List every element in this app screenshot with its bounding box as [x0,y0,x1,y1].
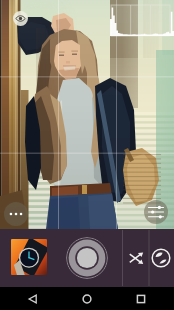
button[interactable]: Shuffle [124,246,148,270]
button[interactable]: Settings [144,200,168,224]
button[interactable]: Effects [150,247,172,269]
button[interactable]: Shutter [66,237,108,279]
button[interactable]: Preview [13,11,28,26]
button[interactable]: Home [76,288,98,310]
button[interactable]: Gallery [11,239,47,275]
button[interactable]: Back [22,288,44,310]
button[interactable]: Recents [130,288,152,310]
button[interactable]: More options [4,202,28,226]
